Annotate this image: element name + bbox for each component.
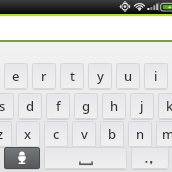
- staticText: d: [26, 97, 35, 115]
- staticText: z: [0, 125, 4, 143]
- button[interactable]: f: [46, 93, 70, 119]
- staticText: j: [140, 97, 144, 115]
- staticText: e: [12, 67, 20, 85]
- button[interactable]: Period and comma: [131, 147, 169, 169]
- staticText: t: [70, 67, 75, 85]
- staticText: g: [82, 97, 91, 115]
- button[interactable]: h: [102, 93, 126, 119]
- staticText: h: [110, 97, 119, 115]
- button[interactable]: t: [60, 63, 84, 89]
- button[interactable]: Voice input: [4, 147, 40, 169]
- button[interactable]: z: [0, 121, 12, 147]
- staticText: n: [136, 125, 145, 143]
- staticText: v: [81, 125, 88, 143]
- button[interactable]: c: [44, 121, 68, 147]
- staticText: c: [53, 125, 60, 143]
- button[interactable]: y: [88, 63, 112, 89]
- button[interactable]: Space: [44, 147, 127, 169]
- button[interactable]: i: [144, 63, 168, 89]
- staticText: b: [108, 125, 117, 143]
- staticText: m: [162, 125, 172, 143]
- button[interactable]: d: [18, 93, 42, 119]
- button[interactable]: j: [130, 93, 154, 119]
- staticText: i: [154, 67, 158, 85]
- staticText: x: [24, 125, 32, 143]
- button[interactable]: r: [32, 63, 56, 89]
- button[interactable]: n: [128, 121, 152, 147]
- staticText: r: [41, 67, 47, 85]
- button[interactable]: e: [4, 63, 28, 89]
- button[interactable]: u: [116, 63, 140, 89]
- staticText: f: [56, 97, 61, 115]
- button[interactable]: g: [74, 93, 98, 119]
- staticText: y: [97, 67, 104, 85]
- button[interactable]: s: [0, 93, 14, 119]
- staticText: u: [124, 67, 133, 85]
- button[interactable]: m: [156, 121, 172, 147]
- button[interactable]: x: [16, 121, 40, 147]
- staticText: s: [0, 97, 6, 115]
- button[interactable]: v: [72, 121, 96, 147]
- button[interactable]: b: [100, 121, 124, 147]
- staticText: k: [166, 97, 172, 115]
- button[interactable]: k: [158, 93, 172, 119]
